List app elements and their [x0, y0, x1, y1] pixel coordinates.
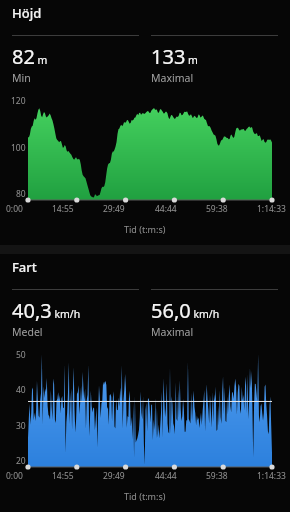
staticText: 56,0 km/h: [151, 297, 220, 324]
staticText: 40: [16, 384, 26, 396]
staticText: Maximal: [151, 325, 194, 339]
staticText: Min: [12, 71, 31, 85]
staticText: 82 m: [12, 43, 48, 70]
staticText: 133 m: [151, 43, 198, 70]
staticText: 1:14:33: [257, 203, 286, 215]
staticText: Höjd: [12, 4, 42, 22]
staticText: Medel: [12, 325, 43, 339]
staticText: 30: [16, 420, 26, 432]
button[interactable]: Fart: [0, 254, 290, 512]
staticText: Tid (t:m:s): [124, 223, 166, 235]
staticText: 14:55: [52, 470, 74, 482]
staticText: Tid (t:m:s): [124, 490, 166, 502]
staticText: 29:49: [103, 203, 125, 215]
staticText: Fart: [12, 258, 37, 276]
staticText: Maximal: [151, 71, 194, 85]
staticText: 1:14:33: [257, 470, 286, 482]
staticText: 14:55: [52, 203, 74, 215]
staticText: 59:38: [206, 470, 228, 482]
staticText: 100: [11, 142, 26, 154]
button[interactable]: Höjd: [0, 0, 290, 245]
staticText: 29:49: [103, 470, 125, 482]
staticText: 59:38: [206, 203, 228, 215]
staticText: 0:00: [6, 470, 23, 482]
staticText: 50: [16, 349, 26, 361]
staticText: 120: [11, 95, 26, 107]
staticText: 0:00: [6, 203, 23, 215]
staticText: 44:44: [155, 470, 177, 482]
staticText: 80: [16, 188, 26, 200]
staticText: 20: [16, 455, 26, 467]
staticText: 40,3 km/h: [12, 297, 81, 324]
staticText: 44:44: [155, 203, 177, 215]
